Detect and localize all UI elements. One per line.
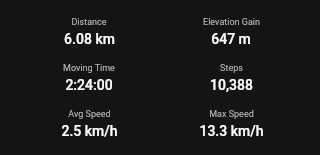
staticText: 13.3 km/h (199, 123, 264, 139)
button[interactable]: Steps (160, 63, 302, 109)
button[interactable]: Avg Speed (18, 109, 160, 155)
staticText: Max Speed (209, 109, 254, 120)
button[interactable]: Distance (18, 17, 160, 63)
staticText: 2.5 km/h (61, 123, 118, 139)
staticText: 647 m (211, 31, 251, 47)
staticText: Elevation Gain (203, 17, 260, 28)
staticText: 10,388 (210, 77, 253, 93)
staticText: Moving Time (63, 63, 115, 74)
staticText: Distance (71, 17, 107, 28)
button[interactable]: Moving Time (18, 63, 160, 109)
button[interactable]: Max Speed (160, 109, 302, 155)
button[interactable]: Elevation Gain (160, 17, 302, 63)
staticText: 2:24:00 (65, 77, 113, 93)
staticText: Steps (220, 63, 243, 74)
staticText: Avg Speed (68, 109, 111, 120)
staticText: 6.08 km (64, 31, 115, 47)
